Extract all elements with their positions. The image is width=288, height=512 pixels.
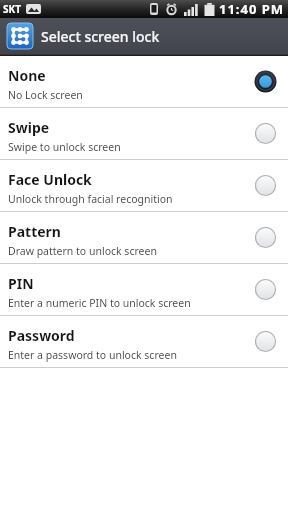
button[interactable]: Face Unlock — [0, 160, 288, 211]
staticText: Password — [8, 326, 75, 345]
staticText: Face Unlock — [8, 170, 92, 189]
staticText: Draw pattern to unlock screen — [8, 244, 157, 258]
staticText: Swipe — [8, 118, 50, 137]
staticText: 11:40 PM — [219, 0, 285, 18]
button[interactable]: None — [0, 56, 288, 107]
button[interactable]: Pattern — [0, 212, 288, 263]
staticText: SKT — [3, 2, 21, 16]
button[interactable]: Swipe — [0, 108, 288, 159]
button[interactable]: Password — [0, 316, 288, 367]
staticText: PIN — [8, 274, 34, 293]
staticText: Unlock through facial recognition — [8, 192, 173, 206]
staticText: Swipe to unlock screen — [8, 140, 121, 154]
staticText: Pattern — [8, 222, 61, 241]
staticText: Enter a numeric PIN to unlock screen — [8, 296, 191, 310]
button[interactable]: PIN — [0, 264, 288, 315]
staticText: Select screen lock — [41, 27, 160, 46]
staticText: No Lock screen — [8, 88, 83, 102]
staticText: Enter a password to unlock screen — [8, 348, 177, 362]
staticText: None — [8, 66, 46, 85]
